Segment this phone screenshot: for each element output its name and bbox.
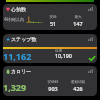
other: Show chart [88,7,93,11]
staticText: 安静 [42,15,64,20]
button[interactable]: カロリー [3,66,97,96]
staticText: 11,162 [3,50,32,62]
staticText: 安静時 [42,80,64,85]
other: Show chart [88,37,93,41]
staticText: 最大 [67,15,89,20]
staticText: 運動活動 [67,80,89,85]
other: Goal reached [89,56,95,61]
other: Show chart [88,69,93,73]
staticText: 1,329 [3,81,27,93]
staticText: 51 [42,20,64,27]
staticText: 心拍数 [11,6,26,12]
staticText: 目標 [55,49,63,54]
button[interactable]: 心拍数 [3,4,97,30]
button[interactable]: ステップ数 [3,34,97,63]
staticText: カロリー [11,68,32,74]
staticText: 903 [42,85,64,92]
staticText: 426 [67,85,89,92]
staticText: 4時間以内 [4,16,25,22]
staticText: 147 [67,20,89,27]
staticText: ステップ数 [11,36,37,42]
staticText: 10,190 [55,52,72,59]
